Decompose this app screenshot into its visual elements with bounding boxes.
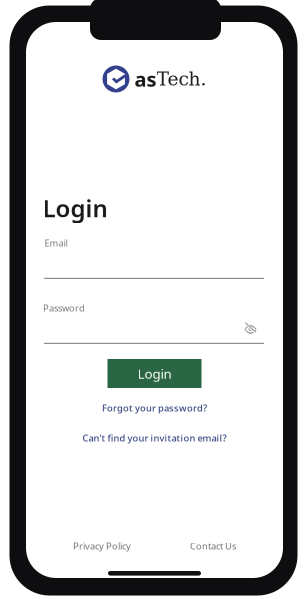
staticText: Tech.: [156, 68, 206, 90]
staticText: Login: [137, 365, 171, 382]
staticText: as: [134, 66, 156, 92]
staticText: Contact Us: [190, 540, 236, 552]
staticText: Privacy Policy: [73, 540, 131, 552]
button[interactable]: Contact Us: [190, 540, 236, 552]
button[interactable]: Login: [107, 359, 201, 388]
button[interactable]: Can't find your invitation email?: [82, 432, 226, 444]
button[interactable]: Privacy Policy: [73, 540, 131, 552]
staticText: Password: [43, 302, 85, 314]
staticText: Forgot your password?: [102, 402, 207, 414]
staticText: Email: [44, 237, 67, 249]
staticText: Login: [42, 192, 107, 224]
staticText: Can't find your invitation email?: [82, 432, 226, 444]
button[interactable]: Forgot your password?: [102, 402, 207, 414]
button[interactable]: Show password: [238, 316, 262, 338]
